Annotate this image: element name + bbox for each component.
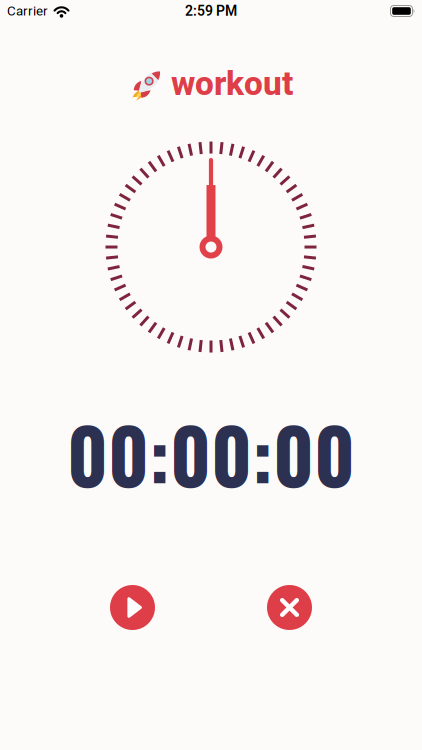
staticText: Carrier bbox=[7, 3, 48, 19]
button[interactable]: Start bbox=[110, 585, 155, 630]
button[interactable]: Cancel bbox=[267, 585, 312, 630]
staticText: workout bbox=[171, 64, 293, 103]
staticText: 00:00:00 bbox=[67, 398, 355, 509]
staticText: 2:59 PM bbox=[185, 3, 237, 19]
